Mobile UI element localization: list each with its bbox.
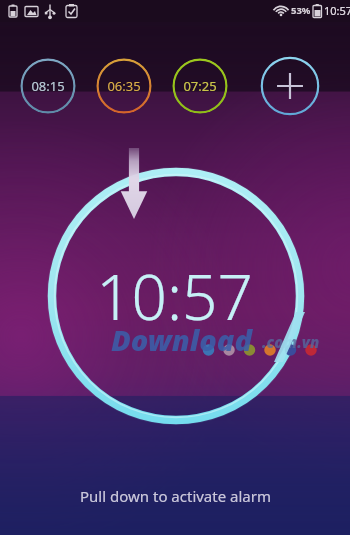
staticText: .com.vn — [262, 332, 320, 352]
staticText: 07:25 — [183, 77, 217, 95]
staticText: 06:35 — [107, 77, 141, 95]
button[interactable]: 06:35 — [96, 58, 152, 114]
button[interactable]: 07:25 — [172, 58, 228, 114]
staticText: 10:57 — [324, 3, 350, 18]
staticText: 08:15 — [31, 77, 65, 95]
button[interactable]: Pull down to activate alarm — [47, 167, 305, 425]
staticText: Download — [111, 320, 252, 359]
button[interactable]: Add alarm — [260, 56, 320, 116]
staticText: 53% — [291, 4, 311, 17]
button[interactable]: 08:15 — [20, 58, 76, 114]
staticText: Pull down to activate alarm — [80, 486, 271, 506]
staticText: 10:57 — [96, 254, 253, 338]
